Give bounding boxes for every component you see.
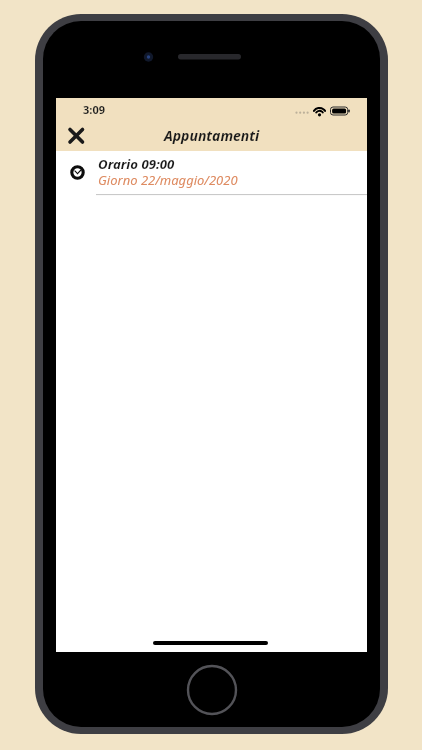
staticText: Appuntamenti [164,126,260,145]
staticText: 3:09 [83,102,105,117]
staticText: Giorno 22/maggio/2020 [98,171,238,189]
button[interactable] [62,124,92,150]
button[interactable]: Orario 09:00 [56,154,367,194]
staticText: Orario 09:00 [98,155,175,173]
